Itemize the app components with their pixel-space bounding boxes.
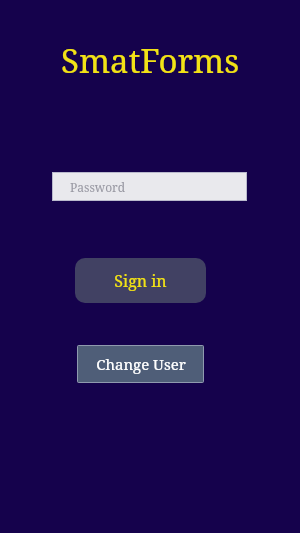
- staticText: Sign in: [114, 270, 167, 292]
- button[interactable]: Change User: [78, 346, 203, 382]
- staticText: Password: [70, 179, 126, 195]
- staticText: SmatForms: [0, 38, 300, 83]
- button[interactable]: Password: [53, 173, 246, 200]
- staticText: Change User: [96, 354, 186, 374]
- button[interactable]: Sign in: [75, 258, 206, 303]
